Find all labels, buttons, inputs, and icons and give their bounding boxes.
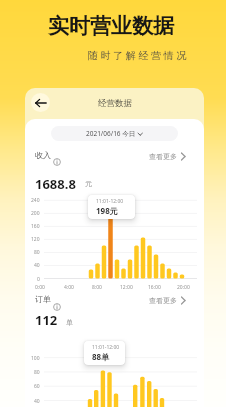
staticText: 60 bbox=[34, 383, 40, 390]
staticText: 160 bbox=[31, 223, 40, 230]
staticText: 240 bbox=[31, 197, 40, 204]
staticText: 11:01-12:00 bbox=[92, 344, 120, 351]
button[interactable]: 查看更多 bbox=[149, 296, 187, 305]
staticText: 查看更多 bbox=[149, 296, 177, 305]
staticText: 单 bbox=[66, 318, 73, 327]
staticText: 88单 bbox=[92, 351, 110, 362]
staticText: 8:00 bbox=[92, 284, 102, 291]
staticText: 查看更多 bbox=[149, 152, 177, 161]
button[interactable] bbox=[31, 93, 50, 112]
staticText: 80 bbox=[34, 249, 40, 256]
staticText: 随时了解经营情况 bbox=[88, 49, 189, 62]
staticText: 198元 bbox=[96, 205, 118, 216]
staticText: 1688.8 bbox=[35, 175, 76, 193]
staticText: 2021/06/16 今日 bbox=[86, 129, 136, 138]
staticText: 实时营业数据 bbox=[48, 13, 174, 39]
staticText: 11:01-12:00 bbox=[96, 198, 124, 205]
staticText: 120 bbox=[31, 236, 40, 243]
staticText: 订单 bbox=[35, 294, 51, 304]
staticText: 100 bbox=[31, 355, 40, 362]
button[interactable]: 查看更多 bbox=[149, 152, 187, 161]
staticText: 12:00 bbox=[120, 284, 133, 291]
staticText: 16:00 bbox=[148, 284, 161, 291]
staticText: 经营数据 bbox=[98, 98, 132, 109]
staticText: 20:00 bbox=[177, 284, 190, 291]
staticText: 40 bbox=[34, 262, 40, 269]
staticText: 112 bbox=[35, 311, 58, 329]
staticText: 元 bbox=[85, 179, 92, 188]
staticText: 80 bbox=[34, 369, 40, 376]
staticText: 40 bbox=[34, 398, 40, 405]
staticText: 200 bbox=[31, 210, 40, 217]
staticText: 0 bbox=[37, 276, 40, 283]
button[interactable]: 2021/06/16 今日 bbox=[51, 126, 178, 141]
staticText: 0:00 bbox=[35, 284, 45, 291]
staticText: 4:00 bbox=[64, 284, 74, 291]
staticText: 收入 bbox=[35, 150, 51, 160]
